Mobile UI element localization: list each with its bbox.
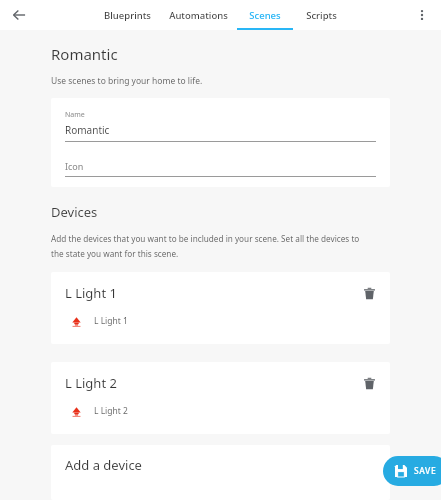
- staticText: Name: [65, 110, 85, 120]
- staticText: L Light 1: [65, 284, 117, 302]
- button[interactable]: Delete L Light 1: [358, 282, 380, 304]
- button[interactable]: L Light 1: [51, 272, 390, 344]
- button[interactable]: More options: [409, 2, 435, 28]
- button[interactable]: Back: [6, 2, 32, 28]
- staticText: the state you want for this scene.: [51, 248, 179, 259]
- staticText: Blueprints: [104, 9, 151, 22]
- staticText: Icon: [65, 160, 84, 172]
- staticText: Add the devices that you want to be incl…: [51, 233, 360, 244]
- staticText: L Light 1: [94, 315, 128, 327]
- button[interactable]: Delete L Light 2: [358, 372, 380, 394]
- staticText: Scripts: [306, 9, 337, 22]
- staticText: SAVE: [414, 465, 437, 477]
- staticText: Automations: [169, 9, 228, 22]
- button[interactable]: L Light 2: [51, 362, 390, 434]
- button[interactable]: Automations: [160, 0, 236, 30]
- button[interactable]: Scripts: [293, 0, 350, 30]
- button[interactable]: SAVE: [383, 456, 441, 486]
- staticText: Scenes: [249, 9, 281, 22]
- button[interactable]: Blueprints: [95, 0, 160, 30]
- staticText: Use scenes to bring your home to life.: [51, 75, 203, 87]
- staticText: Romantic: [51, 44, 118, 64]
- staticText: Romantic: [65, 123, 110, 137]
- staticText: L Light 2: [65, 374, 117, 392]
- button[interactable]: Scenes: [236, 0, 293, 30]
- staticText: Devices: [51, 203, 98, 221]
- staticText: Add a device: [65, 456, 142, 474]
- staticText: L Light 2: [94, 405, 128, 417]
